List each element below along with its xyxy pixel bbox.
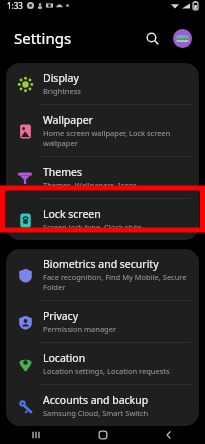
staticText: Settings [14,28,72,48]
button[interactable]: Accounts and backup [6,385,199,426]
staticText: Samsung Cloud, Smart Switch [43,408,149,418]
button[interactable]: Biometrics and security [6,249,199,300]
staticText: Lock screen [43,207,101,221]
button[interactable]: Back [139,426,199,444]
staticText: Biometrics and security [43,257,159,271]
staticText: Display [43,71,79,85]
staticText: Brightness [43,86,81,96]
button[interactable]: Themes [6,157,199,198]
button[interactable]: Account profile [169,25,195,51]
staticText: Location settings, Location requests [43,366,170,376]
staticText: Themes [43,165,83,179]
button[interactable]: Display [6,63,199,104]
button[interactable]: Wallpaper [6,105,199,156]
staticText: Location [43,351,86,365]
staticText: Wallpaper [43,113,93,127]
staticText: Themes, Wallpapers, Icons [43,180,137,190]
button[interactable]: Privacy [6,301,199,342]
button[interactable]: Recents [6,426,66,444]
staticText: Screen lock type, Clock style [43,222,142,232]
staticText: Permission manager [43,324,117,334]
staticText: Accounts and backup [43,393,149,407]
staticText: Face recognition, Find My Mobile, Secure… [43,272,189,292]
button[interactable]: Lock screen [6,199,199,240]
staticText: Privacy [43,309,79,323]
staticText: 1:33 [7,0,23,11]
button[interactable]: Search [139,25,165,51]
staticText: Home screen wallpaper, Lock screen wallp… [43,128,189,148]
button[interactable]: Home [73,426,133,444]
button[interactable]: Location [6,343,199,384]
